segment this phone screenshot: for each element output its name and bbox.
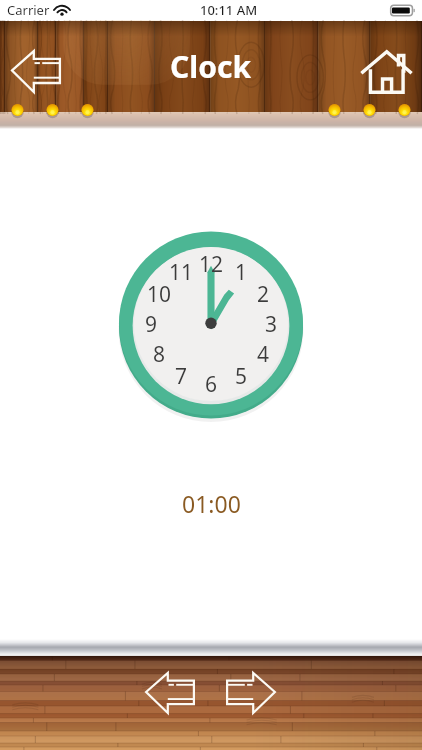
- button[interactable]: Back: [4, 43, 67, 99]
- staticText: 5: [235, 362, 248, 391]
- staticText: 1: [235, 258, 248, 287]
- button[interactable]: Home: [354, 43, 418, 100]
- button[interactable]: Previous: [139, 664, 201, 721]
- staticText: 10:11 AM: [200, 1, 258, 19]
- staticText: 01:00: [182, 488, 241, 519]
- staticText: 7: [175, 362, 188, 391]
- staticText: 4: [257, 340, 270, 369]
- staticText: 2: [257, 280, 270, 309]
- staticText: 9: [145, 310, 158, 339]
- staticText: 10: [147, 280, 172, 309]
- button[interactable]: Next: [220, 664, 282, 721]
- staticText: Carrier: [7, 1, 50, 19]
- staticText: 12: [199, 250, 224, 279]
- staticText: 11: [169, 258, 194, 287]
- staticText: 3: [265, 310, 278, 339]
- staticText: 8: [153, 340, 166, 369]
- staticText: Clock: [170, 46, 252, 87]
- staticText: 6: [205, 370, 218, 399]
